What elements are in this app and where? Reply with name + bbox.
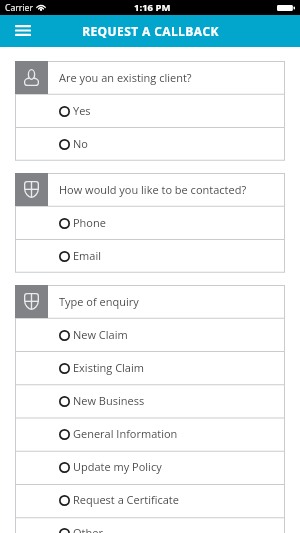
staticText: Email — [73, 248, 101, 263]
staticText: 1:16 PM — [134, 1, 171, 14]
button[interactable]: New Business — [15, 384, 285, 417]
staticText: Are you an existing client? — [59, 70, 192, 85]
button[interactable]: Existing Claim — [15, 351, 285, 384]
staticText: General Information — [73, 426, 178, 441]
button[interactable]: Request a Certificate — [15, 483, 285, 516]
button[interactable]: Open navigation menu — [0, 15, 45, 47]
button[interactable]: Yes — [15, 94, 285, 127]
staticText: Update my Policy — [73, 459, 162, 474]
button[interactable]: Other — [15, 516, 285, 533]
button[interactable]: New Claim — [15, 318, 285, 351]
staticText: No — [73, 136, 88, 151]
staticText: Existing Claim — [73, 360, 144, 375]
staticText: REQUEST A CALLBACK — [82, 23, 219, 39]
button[interactable]: No — [15, 127, 285, 160]
staticText: New Claim — [73, 327, 128, 342]
staticText: Type of enquiry — [59, 294, 139, 309]
staticText: Request a Certificate — [73, 492, 179, 507]
staticText: New Business — [73, 393, 145, 408]
staticText: Yes — [73, 103, 91, 118]
button[interactable]: Phone — [15, 206, 285, 239]
button[interactable]: Update my Policy — [15, 450, 285, 483]
staticText: How would you like to be contacted? — [59, 182, 247, 197]
button[interactable]: General Information — [15, 417, 285, 450]
staticText: Phone — [73, 215, 106, 230]
staticText: Other — [73, 525, 103, 533]
staticText: Carrier — [5, 2, 34, 14]
button[interactable]: Email — [15, 239, 285, 272]
